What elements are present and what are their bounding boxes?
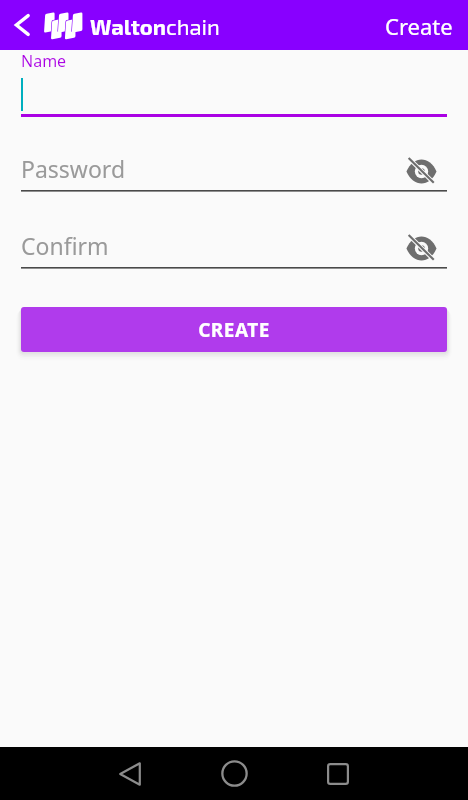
staticText: Walton [90,13,166,39]
button[interactable]: Home [204,747,264,800]
button[interactable]: Recents [308,747,368,800]
staticText: chain [166,13,220,39]
button[interactable]: Back [100,747,160,800]
staticText: CREATE [198,317,270,343]
button[interactable]: Create [385,11,453,41]
button[interactable]: Back [4,4,42,46]
staticText: Password [21,153,126,184]
button[interactable]: CREATE [21,307,447,352]
staticText: Name [21,50,67,72]
staticText: Create [385,11,453,41]
button[interactable]: Toggle password visibility [404,154,438,188]
button[interactable]: Toggle password visibility [404,231,438,265]
staticText: Confirm [21,230,109,261]
